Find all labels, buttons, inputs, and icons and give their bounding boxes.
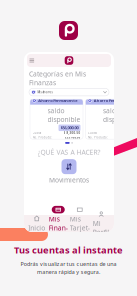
- staticText: ¿QUÉ VAS A HACER?: [37, 148, 100, 157]
- staticText: Cuota:: [32, 131, 41, 135]
- staticText: Mi Perfil: [93, 219, 110, 237]
- staticText: No. Producto:: [88, 136, 108, 139]
- staticText: No. Producto:: [32, 136, 52, 139]
- button[interactable]: Mis ahorros: [29, 88, 109, 96]
- staticText: Movimientos: [49, 176, 89, 184]
- staticText: Ahorro Permanente: [38, 98, 77, 103]
- button[interactable]: Menú: [27, 56, 37, 64]
- staticText: 83576836: [64, 136, 80, 139]
- staticText: Cuota:: [88, 131, 97, 135]
- staticText: Podrás visualizar tus cuentas de una: [20, 260, 117, 267]
- staticText: saldo disponible: [103, 106, 136, 124]
- staticText: Mis Tarjetas: [70, 215, 90, 241]
- staticText: Categorías en Mis Finanzas: [29, 69, 86, 87]
- button[interactable]: Mi Perfil: [90, 215, 112, 231]
- staticText: Inicio: [28, 223, 45, 232]
- button[interactable]: Movimientos: [49, 159, 89, 184]
- button[interactable]: Mis Finanzas: [47, 215, 69, 231]
- staticText: $ 8,300.50: [63, 131, 80, 135]
- staticText: Mis ahorros: [37, 90, 52, 94]
- staticText: saldo disponible: [47, 106, 80, 124]
- staticText: $56,000.00: [60, 125, 78, 130]
- staticText: Tus cuentas al instante: [14, 244, 123, 256]
- staticText: 83576836: [120, 136, 136, 139]
- staticText: Mis Finanzas: [49, 215, 68, 241]
- button[interactable]: Mis Tarjetas: [69, 215, 90, 231]
- button[interactable]: Inicio: [26, 215, 47, 231]
- staticText: Ahorro Permanente: [94, 98, 133, 103]
- staticText: manera rápida y segura.: [37, 268, 100, 275]
